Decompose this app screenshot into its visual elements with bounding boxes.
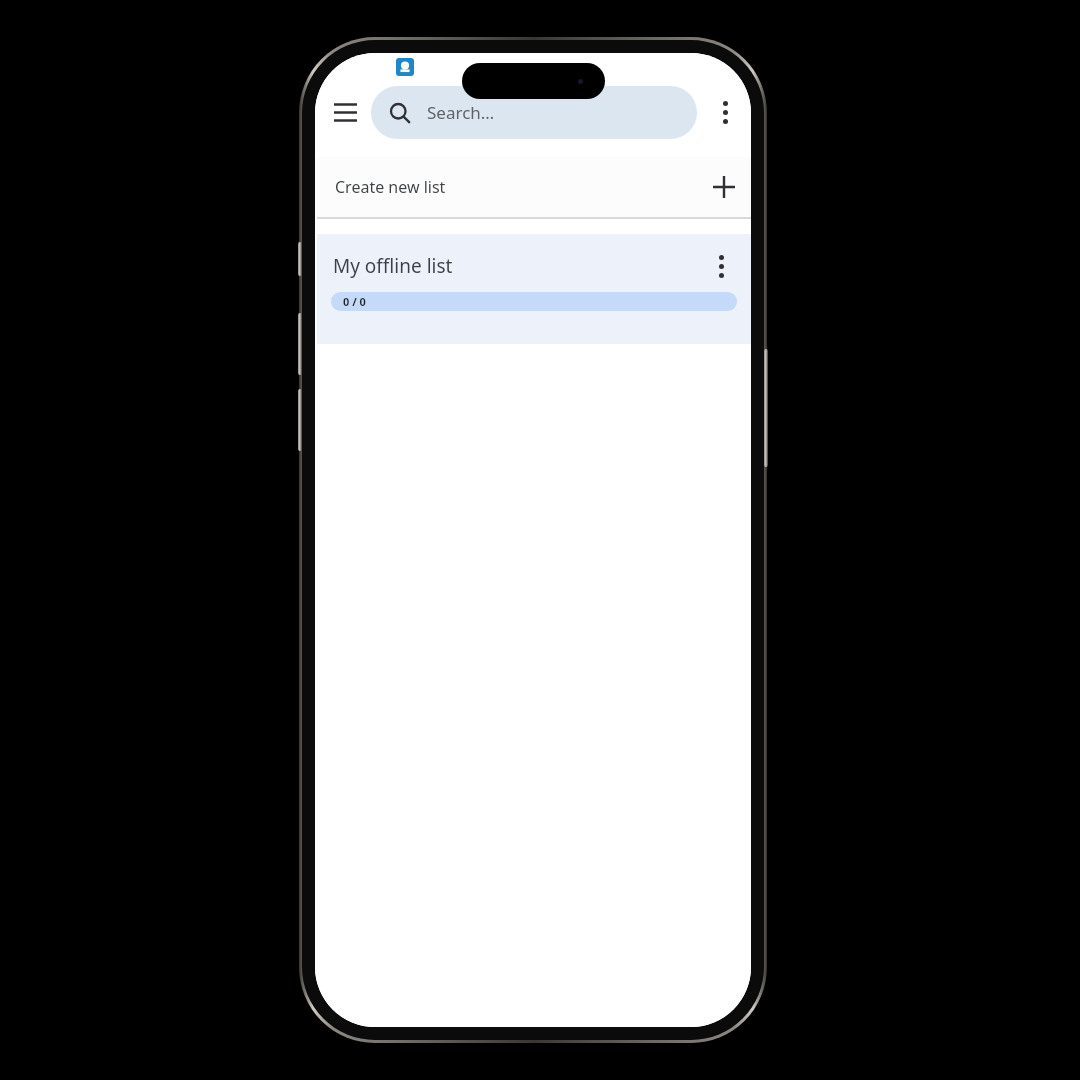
button[interactable]: More options <box>703 90 747 134</box>
staticText: Search… <box>427 101 495 124</box>
button[interactable]: List options <box>701 246 741 286</box>
button[interactable]: Search… <box>371 86 697 139</box>
staticText: My offline list <box>333 253 453 279</box>
staticText: 0 / 0 <box>343 294 366 309</box>
staticText: Create new list <box>335 176 446 198</box>
button[interactable]: Open navigation menu <box>323 90 367 134</box>
button[interactable]: My offline list <box>317 234 751 344</box>
button[interactable]: Create new list <box>317 157 751 217</box>
